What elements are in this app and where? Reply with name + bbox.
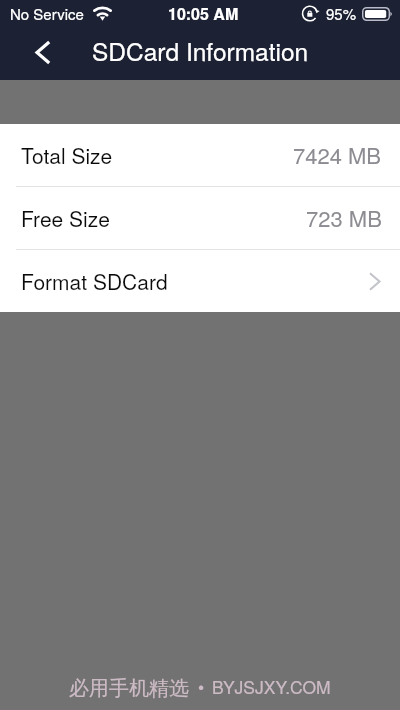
staticText: 95% (326, 3, 357, 24)
staticText: BYJSJXY.COM (212, 674, 331, 699)
staticText: 10:05 AM (168, 2, 239, 25)
staticText: 7424 MB (293, 139, 382, 171)
button[interactable]: Format SDCard (0, 250, 400, 312)
button[interactable]: Free Size (0, 187, 400, 249)
staticText: • (198, 674, 205, 699)
staticText: Free Size (21, 203, 110, 233)
staticText: Total Size (21, 140, 113, 170)
staticText: 必用手机精选 (69, 676, 189, 701)
staticText: 723 MB (306, 202, 382, 234)
staticText: Format SDCard (21, 266, 168, 296)
staticText: No Service (10, 3, 84, 24)
button[interactable]: Back (22, 33, 62, 72)
staticText: SDCard Information (92, 33, 309, 68)
button[interactable]: Total Size (0, 124, 400, 186)
